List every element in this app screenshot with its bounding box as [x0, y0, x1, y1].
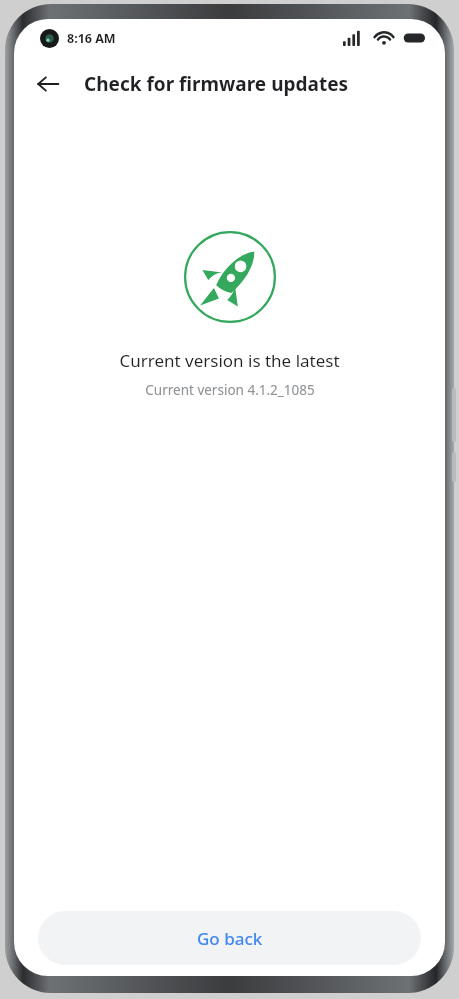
staticText: Go back: [197, 927, 263, 950]
button[interactable]: Go back: [38, 911, 421, 965]
staticText: Current version 4.1.2_1085: [145, 381, 315, 399]
staticText: Check for firmware updates: [84, 71, 349, 97]
staticText: Current version is the latest: [119, 349, 340, 372]
staticText: 8:16 AM: [67, 30, 116, 47]
button[interactable]: Back: [26, 62, 70, 106]
